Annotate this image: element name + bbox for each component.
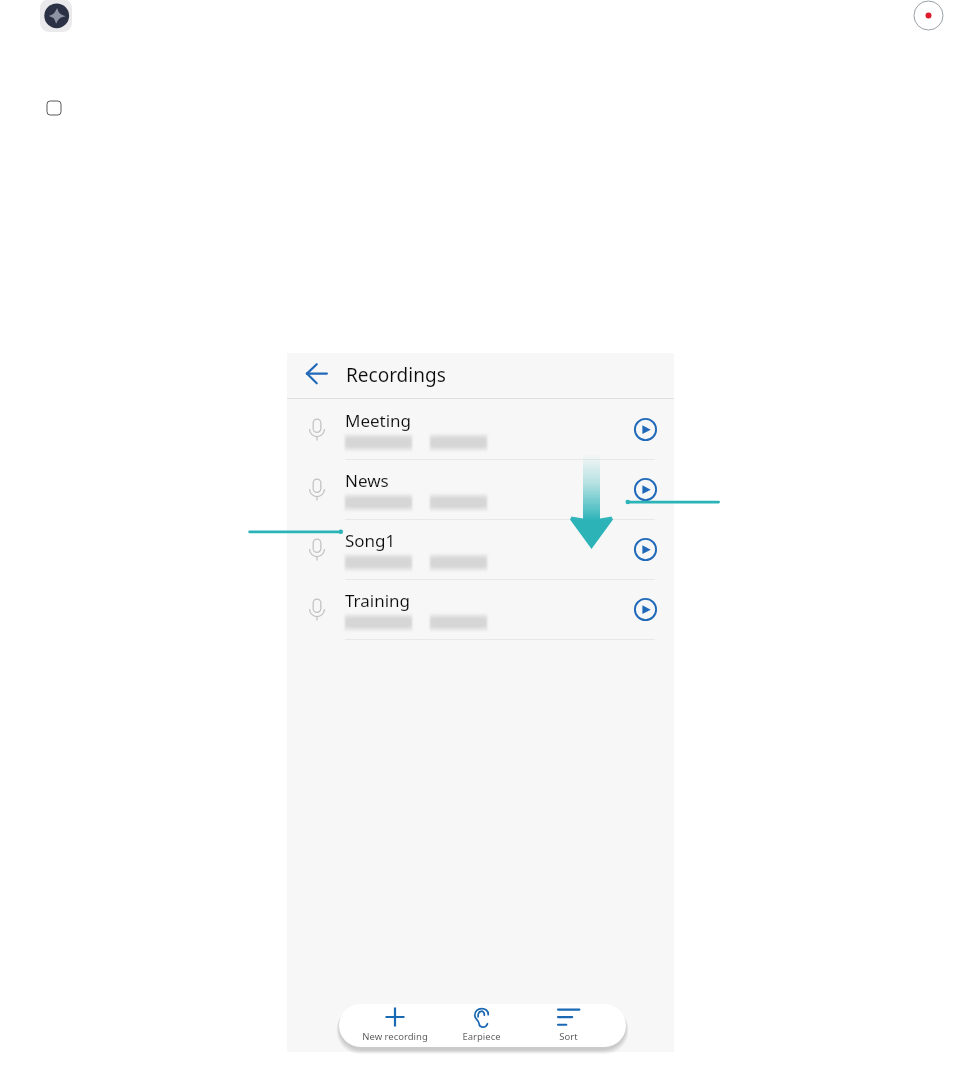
button[interactable]: Meeting bbox=[287, 399, 674, 459]
staticText: Sort bbox=[559, 1030, 578, 1043]
button[interactable]: New recording bbox=[351, 1004, 438, 1047]
button[interactable]: Play bbox=[617, 519, 674, 579]
button[interactable]: Song1 bbox=[287, 519, 674, 579]
staticText: Song1 bbox=[345, 529, 396, 552]
button[interactable]: Play bbox=[617, 459, 674, 519]
staticText: Meeting bbox=[345, 409, 412, 432]
button[interactable]: Play bbox=[617, 579, 674, 639]
button[interactable]: Sort bbox=[525, 1004, 612, 1047]
staticText: News bbox=[345, 469, 389, 492]
staticText: Training bbox=[345, 589, 411, 612]
button[interactable]: Back bbox=[291, 355, 323, 387]
button[interactable]: Record bbox=[913, 0, 944, 31]
staticText: Recordings bbox=[346, 362, 446, 388]
button[interactable]: Earpiece bbox=[438, 1004, 525, 1047]
button[interactable]: Training bbox=[287, 579, 674, 639]
staticText: New recording bbox=[362, 1030, 428, 1043]
staticText: Earpiece bbox=[462, 1030, 501, 1043]
button[interactable]: App icon bbox=[40, 0, 72, 32]
button[interactable]: News bbox=[287, 459, 674, 519]
button[interactable]: Play bbox=[617, 399, 674, 459]
